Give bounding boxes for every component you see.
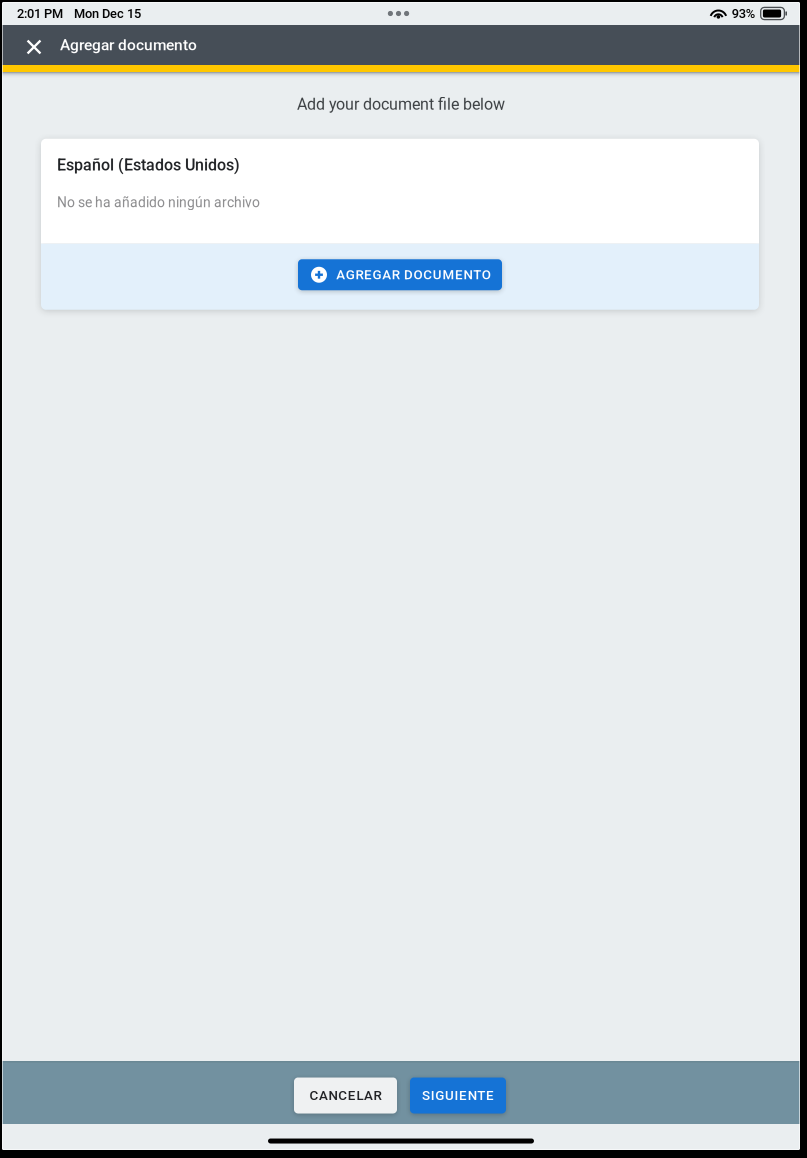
button[interactable]: AGREGAR DOCUMENTO [298, 259, 502, 290]
button[interactable]: Close [19, 25, 49, 65]
staticText: CANCELAR [309, 1088, 382, 1103]
staticText: Add your document file below [297, 95, 505, 114]
staticText: 2:01 PM [17, 6, 63, 21]
staticText: AGREGAR DOCUMENTO [336, 267, 491, 282]
staticText: 93% [732, 6, 755, 21]
staticText: No se ha añadido ningún archivo [57, 194, 260, 211]
staticText: SIGUIENTE [422, 1088, 494, 1103]
staticText: Mon Dec 15 [74, 6, 141, 21]
staticText: Agregar documento [60, 36, 197, 54]
button[interactable]: SIGUIENTE [410, 1077, 506, 1113]
staticText: Español (Estados Unidos) [57, 156, 240, 175]
button[interactable]: CANCELAR [294, 1077, 397, 1113]
